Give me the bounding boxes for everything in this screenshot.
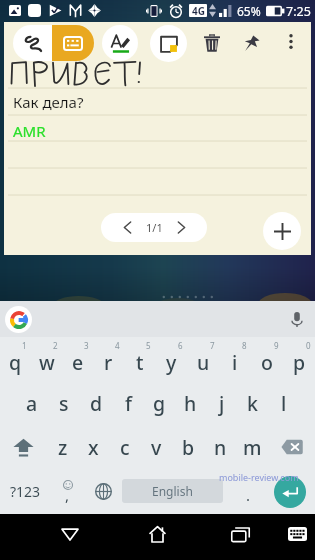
staticText: mobile-review.com: [219, 471, 299, 483]
staticText: q: [9, 349, 22, 376]
button[interactable]: English: [122, 479, 223, 503]
staticText: o: [261, 349, 273, 376]
staticText: t: [136, 349, 144, 376]
staticText: 7: [210, 340, 215, 351]
button[interactable]: d: [80, 381, 112, 425]
staticText: English: [152, 483, 193, 499]
staticText: ?123: [10, 482, 41, 501]
button[interactable]: 2: [31, 337, 62, 381]
staticText: f: [125, 390, 132, 417]
button[interactable]: Shift: [0, 425, 47, 469]
button[interactable]: More options: [278, 28, 304, 54]
button[interactable]: .: [231, 469, 265, 514]
staticText: c: [120, 434, 130, 461]
button[interactable]: g: [144, 381, 175, 425]
staticText: 3: [84, 340, 89, 351]
staticText: e: [72, 349, 84, 376]
button[interactable]: a: [16, 381, 48, 425]
staticText: Как дела?: [13, 92, 84, 112]
button[interactable]: Note color: [150, 25, 187, 62]
staticText: j: [219, 390, 225, 417]
button[interactable]: 6: [155, 337, 187, 381]
staticText: a: [26, 390, 38, 417]
button[interactable]: Add page: [263, 212, 301, 250]
button[interactable]: 4: [93, 337, 124, 381]
staticText: y: [166, 349, 177, 376]
button[interactable]: v: [140, 425, 172, 469]
staticText: 6: [178, 340, 183, 351]
staticText: m: [243, 434, 262, 461]
staticText: d: [90, 390, 103, 417]
button[interactable]: f: [112, 381, 144, 425]
button[interactable]: Voice input: [286, 308, 308, 330]
button[interactable]: 1: [0, 337, 31, 381]
button[interactable]: Change language: [85, 469, 121, 514]
button[interactable]: l: [268, 381, 299, 425]
staticText: p: [293, 349, 306, 376]
staticText: 7:25: [286, 3, 311, 20]
button[interactable]: m: [236, 425, 268, 469]
button[interactable]: Pin: [237, 28, 267, 58]
button[interactable]: 0: [283, 337, 315, 381]
staticText: s: [59, 390, 69, 417]
staticText: 4G: [192, 4, 205, 17]
staticText: 9: [274, 340, 279, 351]
button[interactable]: Back: [49, 517, 91, 551]
button[interactable]: j: [206, 381, 237, 425]
button[interactable]: n: [204, 425, 236, 469]
button[interactable]: Scribble: [13, 25, 52, 61]
button[interactable]: c: [109, 425, 140, 469]
staticText: k: [247, 390, 258, 417]
staticText: 2: [53, 340, 58, 351]
staticText: g: [153, 390, 166, 417]
button[interactable]: s: [48, 381, 80, 425]
button[interactable]: 7: [187, 337, 219, 381]
button[interactable]: 1/1: [101, 213, 207, 242]
staticText: w: [39, 349, 55, 376]
staticText: n: [214, 434, 227, 461]
staticText: u: [197, 349, 210, 376]
staticText: 1/1: [146, 220, 163, 235]
button[interactable]: ?123: [0, 469, 50, 514]
button[interactable]: b: [172, 425, 204, 469]
staticText: 8: [242, 340, 247, 351]
staticText: 5: [146, 340, 151, 351]
staticText: 65%: [237, 3, 261, 19]
staticText: .: [246, 485, 251, 505]
button[interactable]: Delete: [197, 28, 227, 58]
staticText: i: [232, 349, 238, 376]
button[interactable]: Text style: [102, 25, 138, 61]
staticText: x: [88, 434, 99, 461]
staticText: v: [151, 434, 162, 461]
staticText: h: [184, 390, 197, 417]
button[interactable]: z: [47, 425, 78, 469]
button[interactable]: Home: [136, 517, 178, 551]
staticText: r: [104, 349, 113, 376]
button[interactable]: 9: [251, 337, 283, 381]
button[interactable]: k: [237, 381, 268, 425]
button[interactable]: Switch keyboard: [276, 517, 315, 551]
staticText: l: [281, 390, 287, 417]
button[interactable]: 3: [62, 337, 93, 381]
button[interactable]: Recent apps: [219, 517, 261, 551]
staticText: AMR: [13, 121, 46, 141]
button[interactable]: Google search: [5, 306, 32, 333]
button[interactable]: Keyboard: [52, 25, 94, 61]
button[interactable]: ,: [50, 469, 85, 514]
button[interactable]: x: [78, 425, 109, 469]
staticText: 4: [115, 340, 120, 351]
button[interactable]: Backspace: [268, 425, 315, 469]
staticText: b: [182, 434, 195, 461]
staticText: 0: [306, 340, 311, 351]
staticText: 1: [22, 340, 27, 351]
button[interactable]: 8: [219, 337, 251, 381]
staticText: z: [58, 434, 68, 461]
button[interactable]: 5: [124, 337, 155, 381]
staticText: ,: [65, 485, 70, 505]
button[interactable]: Enter: [265, 469, 315, 514]
button[interactable]: h: [175, 381, 206, 425]
